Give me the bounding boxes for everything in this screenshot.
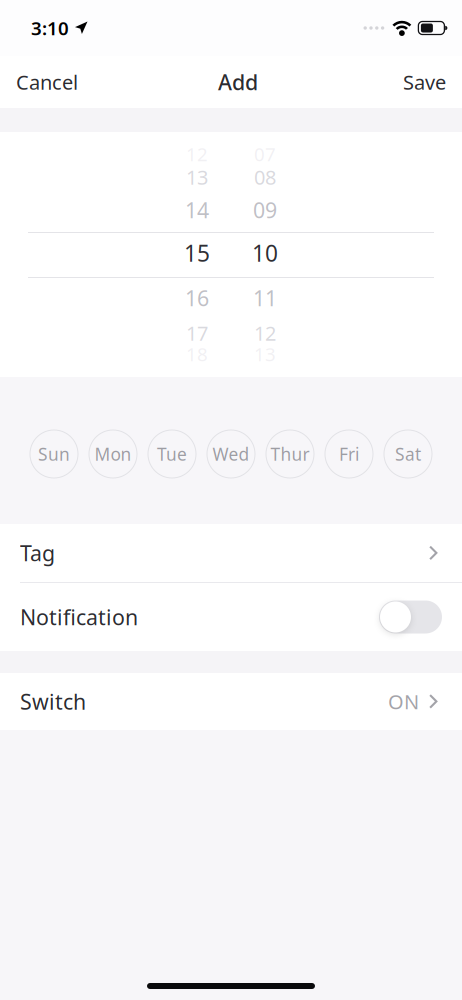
staticText: 15 xyxy=(184,238,210,268)
button[interactable]: Save xyxy=(387,59,462,105)
staticText: Wed xyxy=(212,442,249,465)
staticText: Sun xyxy=(38,442,70,465)
staticText: Save xyxy=(403,69,446,95)
button[interactable]: Switch xyxy=(0,673,462,730)
staticText: 07 xyxy=(254,142,276,166)
button[interactable]: Notification xyxy=(0,583,462,651)
button[interactable]: Thur xyxy=(266,430,314,478)
staticText: Sat xyxy=(395,442,421,465)
staticText: Switch xyxy=(20,687,86,716)
button[interactable]: Fri xyxy=(325,430,373,478)
staticText: ON xyxy=(388,688,419,715)
staticText: 13 xyxy=(254,342,276,366)
staticText: 13 xyxy=(186,164,208,190)
staticText: 14 xyxy=(185,196,209,224)
staticText: Add xyxy=(218,68,258,96)
staticText: 08 xyxy=(254,164,276,190)
staticText: 16 xyxy=(185,284,209,312)
button[interactable]: Cancel xyxy=(0,59,94,105)
staticText: Tag xyxy=(20,539,55,567)
staticText: 11 xyxy=(253,284,277,312)
staticText: Fri xyxy=(339,442,359,465)
button[interactable]: Sun xyxy=(30,430,78,478)
staticText: 12 xyxy=(186,142,208,166)
staticText: Cancel xyxy=(16,69,78,95)
staticText: 10 xyxy=(252,238,278,268)
staticText: Thur xyxy=(270,442,309,465)
button[interactable]: Sat xyxy=(384,430,432,478)
button[interactable]: Wed xyxy=(207,430,255,478)
button[interactable]: Tue xyxy=(148,430,196,478)
staticText: Mon xyxy=(94,442,131,465)
staticText: Tue xyxy=(157,442,187,465)
staticText: 3:10 xyxy=(31,16,69,40)
staticText: 18 xyxy=(186,342,208,366)
staticText: 17 xyxy=(186,320,208,346)
button[interactable]: Mon xyxy=(89,430,137,478)
button[interactable]: Tag xyxy=(0,524,462,582)
staticText: Notification xyxy=(20,603,138,631)
staticText: 09 xyxy=(253,196,277,224)
staticText: 12 xyxy=(254,320,276,346)
